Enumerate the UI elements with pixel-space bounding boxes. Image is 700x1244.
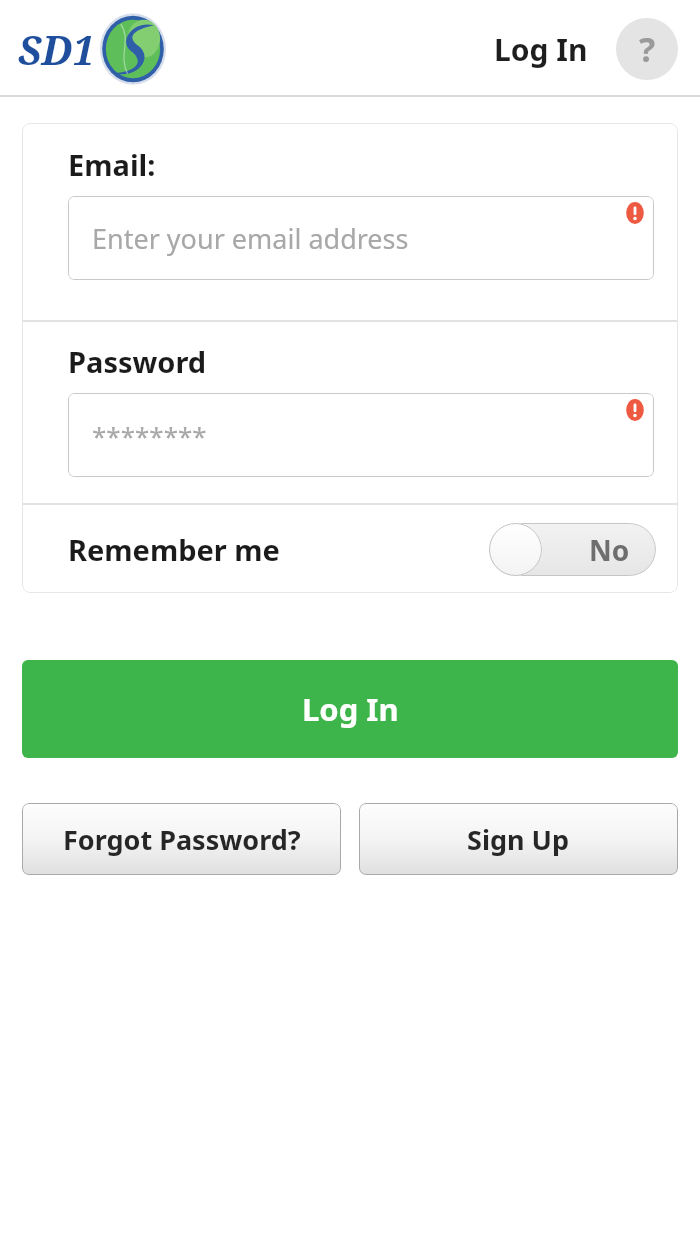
button[interactable]: ********	[68, 393, 654, 477]
staticText: Enter your email address	[92, 220, 409, 257]
button[interactable]: Help	[616, 18, 678, 80]
staticText: Forgot Password?	[63, 821, 301, 858]
button[interactable]: Log In	[488, 21, 594, 78]
button[interactable]: Forgot Password?	[22, 803, 341, 875]
staticText: No	[589, 531, 630, 569]
staticText: Log In	[302, 688, 399, 730]
staticText: Remember me	[68, 530, 280, 569]
staticText: ********	[92, 418, 207, 453]
staticText: Sign Up	[467, 821, 570, 858]
staticText: Log In	[494, 29, 588, 70]
button[interactable]: Log In	[22, 660, 678, 758]
staticText: Password	[68, 342, 207, 381]
staticText: Email:	[68, 145, 156, 184]
button[interactable]: Remember me	[22, 505, 678, 593]
button[interactable]: Sign Up	[359, 803, 678, 875]
staticText: SD1	[18, 22, 95, 76]
button[interactable]: Enter your email address	[68, 196, 654, 280]
staticText: ?	[639, 26, 656, 72]
